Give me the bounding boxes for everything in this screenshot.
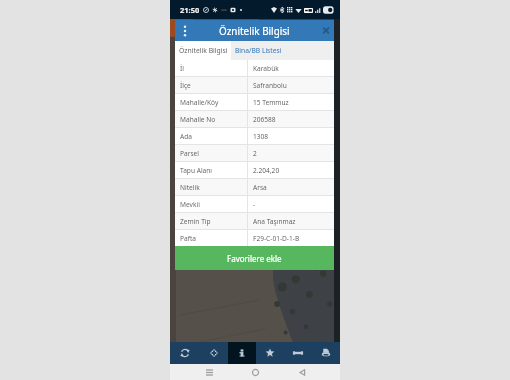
button[interactable]: Tapu Alanı bbox=[175, 162, 334, 178]
staticText: Mevkii bbox=[180, 200, 200, 209]
staticText: 21:50 bbox=[180, 5, 200, 15]
button[interactable]: Mevkii bbox=[175, 196, 334, 212]
staticText: Ana Taşınmaz bbox=[253, 217, 296, 226]
staticText: 2 bbox=[253, 149, 257, 158]
staticText: Pafta bbox=[180, 234, 197, 243]
button[interactable]: More options bbox=[178, 24, 192, 38]
staticText: F29-C-01-D-1-B bbox=[253, 234, 300, 243]
staticText: Tapu Alanı bbox=[180, 166, 213, 175]
staticText: Öznitelik Bilgisi bbox=[219, 24, 290, 37]
button[interactable]: İl bbox=[175, 60, 334, 76]
button[interactable]: Mahalle No bbox=[175, 111, 334, 127]
button[interactable]: Bina/BB Listesi bbox=[231, 41, 334, 60]
button[interactable]: Öznitelik Bilgisi bbox=[175, 41, 231, 60]
button[interactable]: Refresh bbox=[170, 342, 199, 364]
button[interactable]: Favorilere ekle bbox=[175, 246, 334, 270]
staticText: Safranbolu bbox=[253, 81, 287, 90]
button[interactable]: Zemin Tip bbox=[175, 213, 334, 229]
staticText: Arsa bbox=[253, 183, 267, 192]
button[interactable]: Ada bbox=[175, 128, 334, 144]
button[interactable]: Locate bbox=[199, 342, 228, 364]
button[interactable]: Mahalle/Köy bbox=[175, 94, 334, 110]
staticText: 15 Temmuz bbox=[253, 98, 289, 107]
staticText: Mahalle No bbox=[180, 115, 216, 124]
staticText: Öznitelik Bilgisi bbox=[179, 46, 228, 55]
button[interactable]: Print bbox=[312, 342, 340, 364]
staticText: Favorilere ekle bbox=[227, 253, 282, 264]
button[interactable]: Recents bbox=[201, 364, 217, 380]
staticText: 2.204,20 bbox=[253, 166, 280, 175]
button[interactable]: Parsel bbox=[175, 145, 334, 161]
button[interactable]: Nitelik bbox=[175, 179, 334, 195]
button[interactable]: Pafta bbox=[175, 230, 334, 246]
staticText: Zemin Tip bbox=[180, 217, 211, 226]
button[interactable]: Home bbox=[247, 364, 263, 380]
staticText: - bbox=[253, 200, 256, 209]
staticText: Parsel bbox=[180, 149, 199, 158]
button[interactable]: Close bbox=[319, 24, 333, 38]
staticText: Mahalle/Köy bbox=[180, 98, 219, 107]
staticText: 206588 bbox=[253, 115, 276, 124]
staticText: Bina/BB Listesi bbox=[235, 46, 282, 55]
staticText: İl bbox=[180, 64, 184, 73]
staticText: Ada bbox=[180, 132, 192, 141]
staticText: Nitelik bbox=[180, 183, 200, 192]
button[interactable]: Info bbox=[228, 342, 256, 364]
button[interactable]: Measure bbox=[284, 342, 312, 364]
staticText: İlçe bbox=[180, 81, 191, 90]
button[interactable]: Favorite bbox=[256, 342, 284, 364]
button[interactable]: Back bbox=[294, 364, 310, 380]
staticText: Karabük bbox=[253, 64, 279, 73]
button[interactable]: İlçe bbox=[175, 77, 334, 93]
staticText: 1308 bbox=[253, 132, 269, 141]
